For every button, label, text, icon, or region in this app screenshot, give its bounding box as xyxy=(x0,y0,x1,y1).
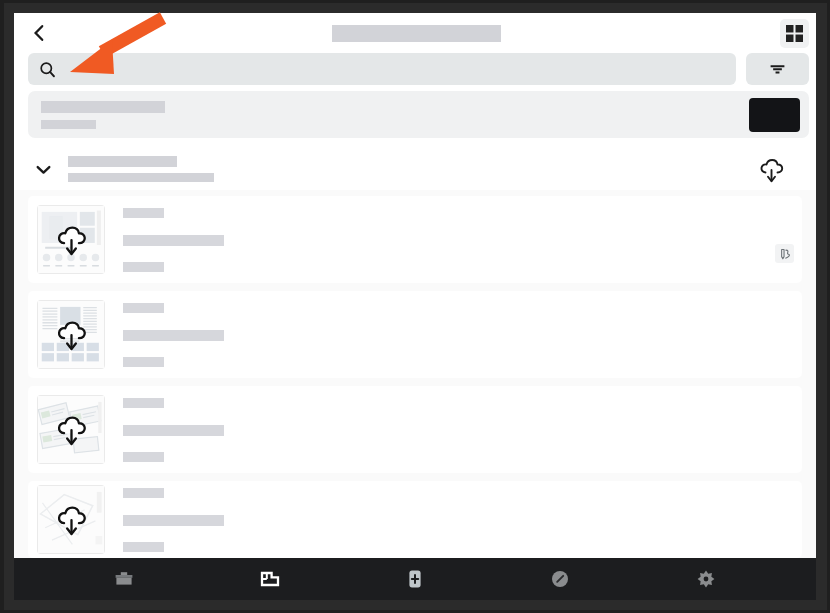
button[interactable]: Projects xyxy=(89,558,159,600)
button[interactable]: Progress xyxy=(525,558,595,600)
button[interactable]: Grid view xyxy=(780,19,809,48)
button[interactable]: Settings xyxy=(671,558,741,600)
button[interactable]: Markup xyxy=(28,196,802,283)
button[interactable] xyxy=(28,481,802,558)
button[interactable]: Markup xyxy=(775,244,794,263)
button[interactable] xyxy=(28,386,802,473)
button[interactable]: Download all xyxy=(14,148,816,190)
button[interactable] xyxy=(28,91,809,138)
button[interactable] xyxy=(28,53,736,85)
button[interactable]: Filter xyxy=(746,53,809,85)
button[interactable]: Download all xyxy=(756,154,786,184)
button[interactable]: Floor plans xyxy=(235,558,305,600)
button[interactable] xyxy=(28,291,802,378)
button[interactable]: Back xyxy=(22,16,56,50)
button[interactable]: Add xyxy=(380,558,450,600)
